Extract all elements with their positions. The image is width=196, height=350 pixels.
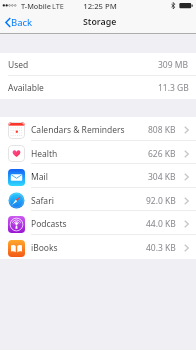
staticText: Calendars & Reminders — [31, 124, 125, 136]
staticText: LTE — [52, 1, 64, 11]
staticText: 40.3 KB — [146, 242, 176, 254]
staticText: iBooks — [31, 242, 58, 254]
staticText: 304 KB — [148, 171, 176, 183]
staticText: 626 KB — [148, 148, 176, 160]
staticText: 44.0 KB — [146, 218, 176, 230]
staticText: Storage — [83, 16, 117, 28]
staticText: Available — [8, 82, 44, 94]
button[interactable]: Back — [0, 14, 38, 31]
staticText: 11.3 GB — [158, 82, 189, 94]
staticText: Safari — [31, 195, 54, 207]
staticText: Podcasts — [31, 218, 67, 230]
staticText: T-Mobile — [21, 1, 51, 11]
staticText: 309 MB — [158, 59, 189, 71]
button[interactable]: iBooks — [0, 235, 196, 259]
button[interactable]: Calendars & Reminders — [0, 117, 196, 141]
staticText: 92.0 KB — [146, 195, 176, 207]
staticText: 12:25 PM — [2, 1, 196, 11]
button[interactable]: Mail — [0, 164, 196, 188]
button[interactable]: Health — [0, 141, 196, 164]
button[interactable]: Podcasts — [0, 211, 196, 235]
button[interactable]: Safari — [0, 188, 196, 211]
button[interactable]: Used — [0, 53, 196, 76]
staticText: Mail — [31, 171, 48, 183]
staticText: Back — [11, 16, 33, 29]
staticText: 808 KB — [148, 124, 176, 136]
staticText: Health — [31, 148, 58, 160]
staticText: Used — [8, 59, 29, 71]
button[interactable]: Available — [0, 76, 196, 99]
